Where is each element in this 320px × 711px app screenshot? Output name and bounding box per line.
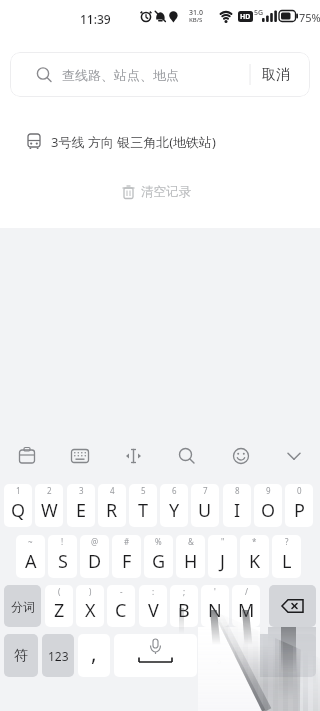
button[interactable]: 查线路、站点、地点: [10, 52, 310, 97]
button[interactable]: [108, 440, 161, 472]
staticText: ,: [91, 639, 97, 668]
staticText: 取消: [262, 66, 290, 84]
button[interactable]: 3: [67, 484, 95, 527]
staticText: I: [234, 498, 241, 523]
staticText: -: [120, 586, 123, 597]
staticText: 2: [47, 485, 52, 496]
staticText: T: [138, 498, 149, 523]
button[interactable]: !: [48, 535, 77, 578]
staticText: 75%: [299, 10, 320, 25]
staticText: Z: [54, 598, 65, 623]
staticText: %: [155, 536, 162, 547]
staticText: K: [249, 549, 261, 574]
staticText: Y: [169, 498, 180, 523]
staticText: @: [91, 536, 99, 547]
staticText: 9: [266, 485, 271, 496]
button[interactable]: 7: [191, 484, 219, 527]
button[interactable]: 5: [129, 484, 157, 527]
staticText: 6: [172, 485, 177, 496]
button[interactable]: %: [144, 535, 173, 578]
button[interactable]: [269, 585, 316, 627]
staticText: ?: [285, 536, 289, 547]
button[interactable]: ,: [78, 634, 110, 677]
button[interactable]: 6: [160, 484, 188, 527]
button[interactable]: [114, 634, 197, 677]
staticText: D: [88, 549, 102, 574]
button[interactable]: 9: [254, 484, 282, 527]
staticText: H: [184, 549, 198, 574]
staticText: 5G: [254, 8, 264, 18]
button[interactable]: /: [232, 585, 260, 627]
button[interactable]: 3号线 方向 银三角北(地铁站): [0, 120, 320, 163]
staticText: ': [214, 586, 216, 597]
button[interactable]: 清空记录: [0, 180, 316, 204]
button[interactable]: (: [45, 585, 73, 627]
staticText: 3号线 方向 银三角北(地铁站): [51, 133, 216, 151]
button[interactable]: @: [80, 535, 109, 578]
staticText: 31.0: [189, 8, 203, 18]
staticText: ): [89, 586, 92, 597]
button[interactable]: 8: [223, 484, 251, 527]
button[interactable]: 分词: [4, 585, 41, 627]
staticText: :: [152, 586, 155, 597]
button[interactable]: 符: [4, 634, 38, 677]
staticText: 4: [110, 485, 115, 496]
button[interactable]: [214, 440, 267, 472]
staticText: Q: [11, 498, 26, 523]
button[interactable]: :: [139, 585, 167, 627]
button[interactable]: 123: [42, 634, 74, 677]
button[interactable]: 0: [285, 484, 313, 527]
button[interactable]: [54, 440, 108, 472]
staticText: 符: [14, 647, 28, 665]
staticText: 清空记录: [141, 184, 191, 200]
staticText: G: [152, 549, 166, 574]
staticText: M: [238, 598, 255, 623]
staticText: L: [282, 549, 292, 574]
staticText: U: [198, 498, 212, 523]
button[interactable]: ?: [272, 535, 301, 578]
staticText: 1: [16, 485, 21, 496]
button[interactable]: *: [240, 535, 269, 578]
staticText: ;: [183, 586, 186, 597]
button[interactable]: &: [176, 535, 205, 578]
button[interactable]: #: [112, 535, 141, 578]
button[interactable]: 。: [201, 634, 246, 677]
button[interactable]: ': [201, 585, 229, 627]
staticText: N: [208, 598, 222, 623]
staticText: 0: [297, 485, 302, 496]
button[interactable]: ): [76, 585, 104, 627]
staticText: !: [61, 536, 64, 547]
staticText: 7: [203, 485, 208, 496]
button[interactable]: ": [208, 535, 237, 578]
button[interactable]: 2: [35, 484, 63, 527]
staticText: R: [106, 498, 118, 523]
button[interactable]: [0, 440, 54, 472]
staticText: 11:39: [80, 11, 111, 27]
button[interactable]: 1: [4, 484, 32, 527]
button[interactable]: [161, 440, 214, 472]
staticText: ": [221, 536, 225, 547]
staticText: B: [178, 598, 190, 623]
button[interactable]: 取消: [242, 52, 310, 97]
staticText: O: [261, 498, 276, 523]
staticText: HD: [240, 12, 251, 22]
staticText: P: [294, 498, 305, 523]
staticText: 5: [141, 485, 146, 496]
button[interactable]: [250, 634, 316, 677]
button[interactable]: ;: [170, 585, 198, 627]
staticText: X: [85, 598, 96, 623]
staticText: KB/S: [189, 16, 203, 24]
staticText: 3: [79, 485, 84, 496]
staticText: &: [188, 536, 194, 547]
button[interactable]: 4: [98, 484, 126, 527]
button[interactable]: ~: [16, 535, 45, 578]
staticText: 123: [48, 648, 69, 664]
staticText: #: [124, 536, 130, 547]
staticText: J: [220, 549, 225, 574]
staticText: /: [245, 586, 248, 597]
button[interactable]: -: [107, 585, 135, 627]
staticText: *: [252, 536, 257, 547]
button[interactable]: [267, 440, 320, 472]
staticText: F: [122, 549, 132, 574]
